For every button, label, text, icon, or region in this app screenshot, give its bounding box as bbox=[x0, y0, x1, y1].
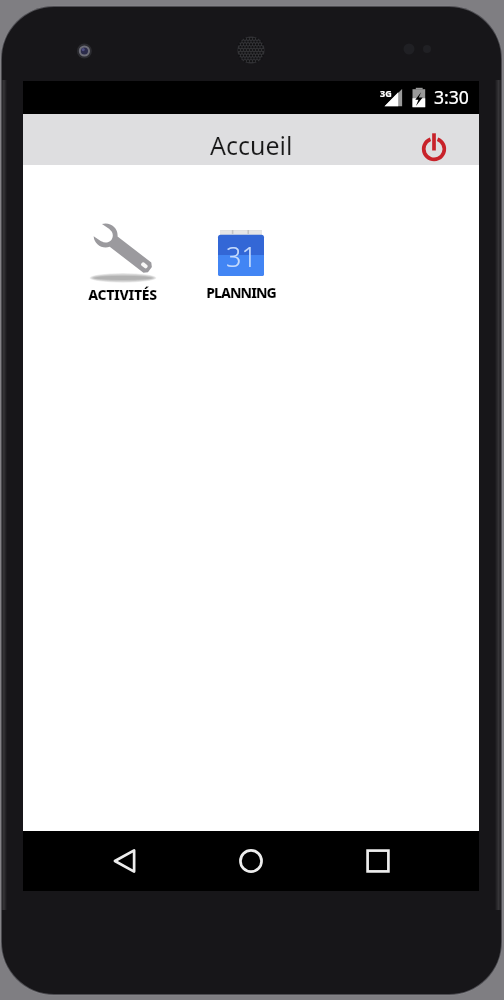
staticText: PLANNING bbox=[206, 283, 276, 302]
staticText: 3G bbox=[380, 87, 392, 99]
button[interactable]: Recent apps bbox=[366, 849, 390, 873]
button[interactable]: 31 bbox=[189, 213, 293, 303]
staticText: ACTIVITÉS bbox=[88, 285, 157, 303]
button[interactable]: Back bbox=[113, 849, 137, 873]
staticText: 31 bbox=[226, 238, 257, 275]
staticText: Accueil bbox=[210, 128, 293, 162]
staticText: 3:30 bbox=[434, 85, 469, 109]
button[interactable]: Power off bbox=[417, 132, 451, 166]
button[interactable]: ACTIVITÉS bbox=[70, 213, 174, 303]
button[interactable]: Home bbox=[239, 849, 263, 873]
